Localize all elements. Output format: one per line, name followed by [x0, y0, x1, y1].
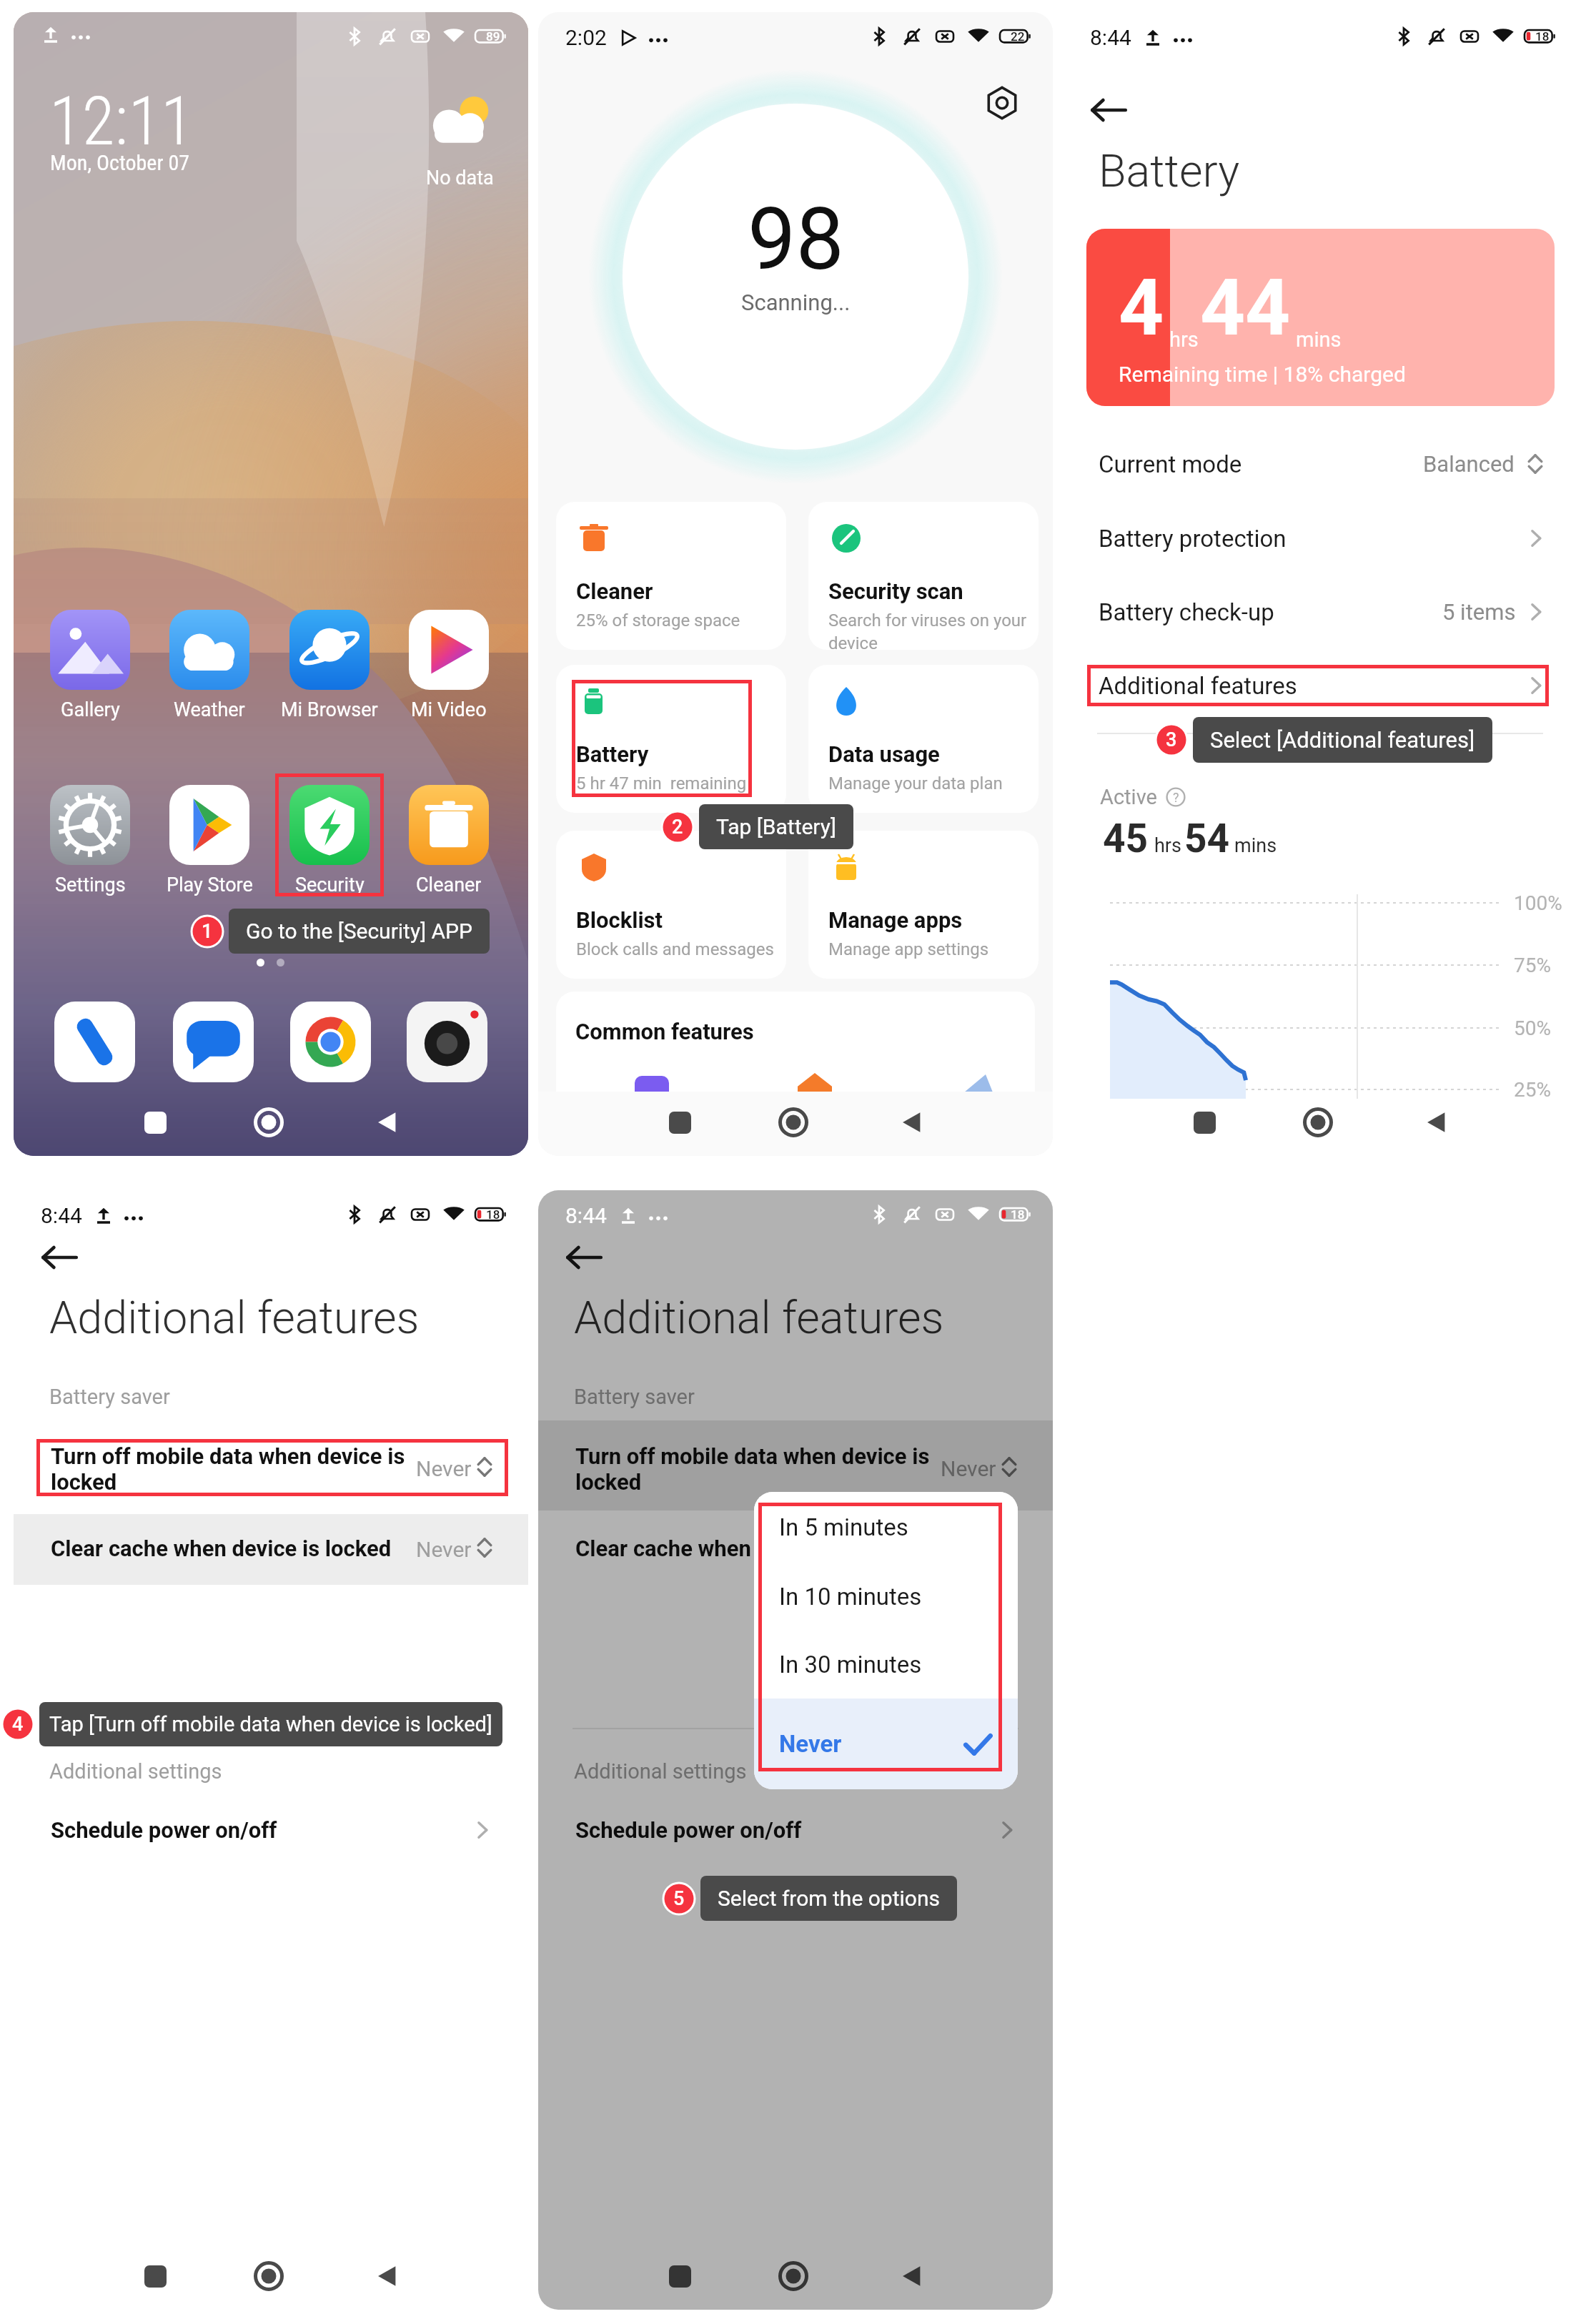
staticText: Never	[779, 1730, 842, 1758]
staticText: No data	[426, 167, 494, 189]
staticText: ?	[1173, 790, 1179, 805]
button[interactable]: Security scan	[808, 502, 1039, 650]
button[interactable]: Back	[36, 1235, 82, 1280]
button[interactable]	[173, 1002, 254, 1082]
button[interactable]: Home	[249, 1102, 289, 1142]
staticText: 44	[1200, 262, 1291, 354]
button[interactable]: Back	[367, 2256, 407, 2296]
button[interactable]	[407, 1002, 487, 1082]
staticText: Blocklist	[576, 907, 663, 933]
staticText: 18	[1011, 1207, 1025, 1222]
button[interactable]: Back	[1086, 87, 1131, 133]
button[interactable]: Recent apps	[660, 2256, 700, 2296]
button[interactable]: Additional features	[1063, 648, 1577, 723]
button[interactable]: Home	[1298, 1102, 1338, 1142]
staticText: Select [Additional features]	[1210, 727, 1475, 753]
staticText: Never	[416, 1456, 472, 1481]
button[interactable]: Blocklist	[556, 831, 786, 979]
staticText: Active	[1100, 785, 1157, 809]
staticText: Manage app settings	[828, 939, 989, 959]
staticText: Scanning...	[741, 290, 851, 315]
staticText: 4	[12, 1713, 24, 1736]
button[interactable]: Back	[892, 1102, 932, 1142]
button[interactable]: Back	[561, 1235, 607, 1280]
button[interactable]: Recent apps	[135, 1102, 175, 1142]
button[interactable]: Data usage	[808, 665, 1039, 813]
button[interactable]: Current mode	[1063, 427, 1577, 501]
staticText: Additional features	[49, 1292, 420, 1345]
button[interactable]: In 30 minutes	[754, 1631, 1018, 1699]
button[interactable]: Mi Video	[400, 610, 497, 721]
button[interactable]: Weather widget	[427, 94, 492, 151]
staticText: 2	[672, 816, 683, 839]
staticText: Tap [Battery]	[716, 814, 836, 839]
staticText: Clear cache when device is locked	[51, 1536, 392, 1561]
staticText: 8:44	[1090, 25, 1131, 50]
button[interactable]: Battery protection	[1063, 501, 1577, 575]
staticText: In 10 minutes	[779, 1583, 922, 1611]
staticText: Mon, October 07	[50, 150, 190, 175]
button[interactable]: Battery check-up	[1063, 575, 1577, 649]
staticText: Go to the [Security] APP	[246, 919, 472, 944]
staticText: 8:44	[565, 1203, 607, 1228]
button[interactable]: In 10 minutes	[754, 1563, 1018, 1631]
button[interactable]: In 5 minutes	[754, 1492, 1018, 1563]
button[interactable]: Recent apps	[660, 1102, 700, 1142]
staticText: 5	[673, 1887, 685, 1910]
button[interactable]: Home	[249, 2256, 289, 2296]
button[interactable]: Security	[281, 785, 378, 896]
button[interactable]: Back	[367, 1102, 407, 1142]
button[interactable]: Play Store	[161, 785, 258, 896]
button[interactable]: Common features	[556, 992, 1035, 1113]
staticText: Current mode	[1099, 450, 1242, 478]
staticText: Additional settings	[574, 1759, 747, 1784]
button[interactable]: Never	[754, 1699, 1018, 1789]
button[interactable]: Battery	[556, 665, 786, 813]
button[interactable]: Clear cache when device is locked	[14, 1514, 528, 1585]
button[interactable]: Recent apps	[1184, 1102, 1224, 1142]
staticText: Turn off mobile data when device is lock…	[51, 1443, 405, 1495]
staticText: Battery saver	[574, 1385, 695, 1409]
staticText: 8:44	[41, 1203, 82, 1228]
button[interactable]: Schedule power on/off	[538, 1794, 1053, 1866]
staticText: Settings	[55, 874, 126, 896]
staticText: 89	[486, 29, 500, 44]
button[interactable]	[54, 1002, 135, 1082]
button[interactable]: Settings	[41, 785, 139, 896]
staticText: Security	[295, 874, 365, 896]
button[interactable]: Home	[773, 1102, 813, 1142]
staticText: 5 items	[1442, 599, 1516, 625]
staticText: 4	[1119, 262, 1164, 354]
staticText: In 5 minutes	[779, 1513, 908, 1541]
staticText: 2:02	[565, 25, 607, 50]
staticText: Gallery	[61, 698, 120, 721]
button[interactable]: Recent apps	[135, 2256, 175, 2296]
button[interactable]: Manage apps	[808, 831, 1039, 979]
staticText: hrs	[1154, 834, 1181, 857]
button[interactable]: Cleaner	[556, 502, 786, 650]
staticText: 25%	[1514, 1078, 1551, 1102]
staticText: 5 hr 47 min remaining	[576, 773, 747, 793]
button[interactable]: Home	[773, 2256, 813, 2296]
button[interactable]: Clear cache when device is locked	[538, 1514, 1053, 1585]
staticText: hrs	[1169, 327, 1199, 352]
button[interactable]: Settings	[981, 82, 1023, 124]
button[interactable]: 12:11	[49, 82, 194, 161]
staticText: Cleaner	[576, 578, 653, 604]
button[interactable]: Gallery	[41, 610, 139, 721]
button[interactable]: Turn off mobile data when device is lock…	[14, 1439, 528, 1496]
button[interactable]: Mi Browser	[281, 610, 378, 721]
button[interactable]: Cleaner	[400, 785, 497, 896]
button[interactable]	[290, 1002, 371, 1082]
button[interactable]: Back	[1417, 1102, 1457, 1142]
staticText: Block calls and messages	[576, 939, 774, 959]
button[interactable]: Back	[892, 2256, 932, 2296]
button[interactable]: Turn off mobile data when device is lock…	[538, 1439, 1053, 1496]
staticText: Battery	[576, 741, 649, 767]
button[interactable]: Weather	[161, 610, 258, 721]
staticText: Never	[416, 1537, 472, 1562]
staticText: 98	[748, 189, 844, 290]
button[interactable]: Schedule power on/off	[14, 1794, 528, 1866]
staticText: Manage apps	[828, 907, 963, 933]
staticText: 22	[1011, 29, 1025, 44]
